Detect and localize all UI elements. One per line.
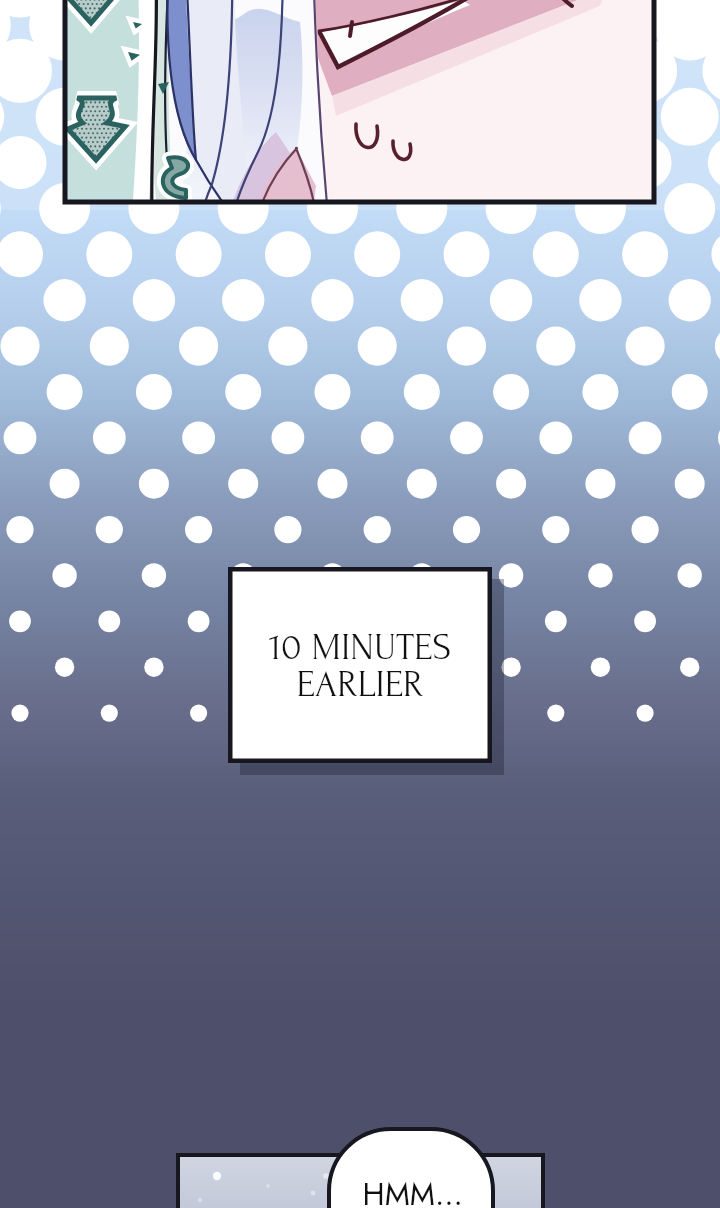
button[interactable]: [0, 0, 720, 1208]
